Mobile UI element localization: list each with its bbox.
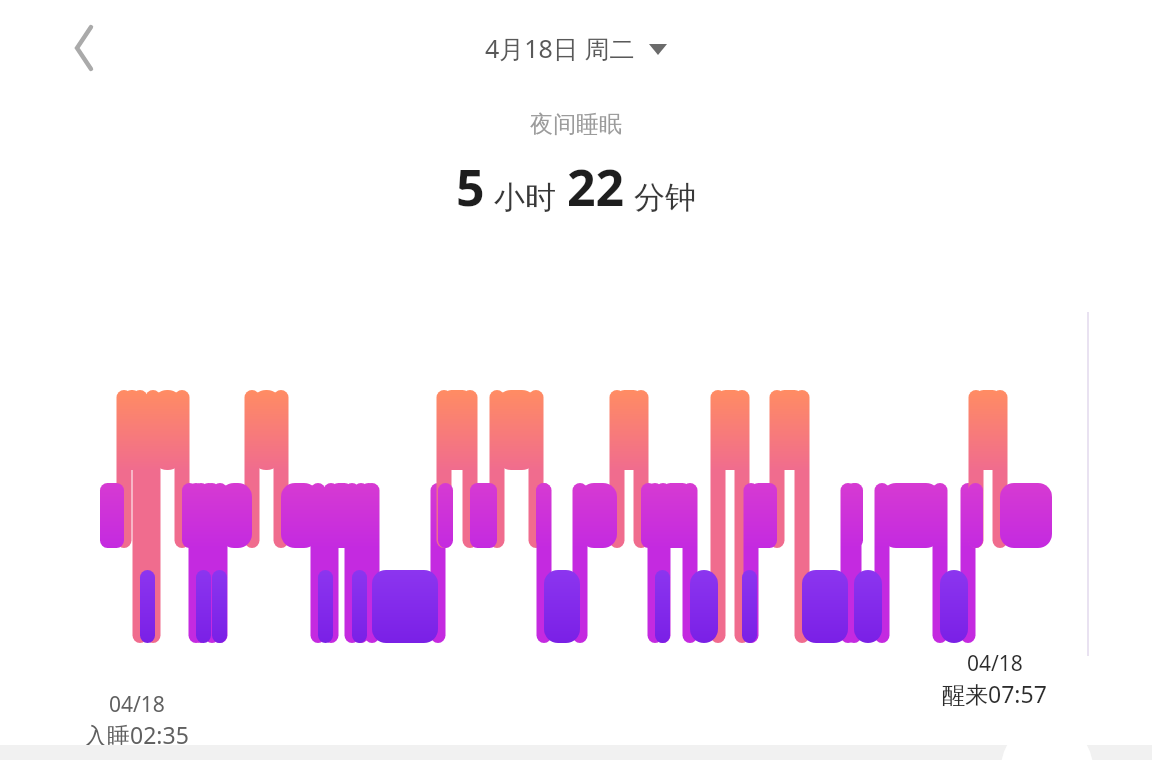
staticText: 04/18 xyxy=(967,649,1023,678)
staticText: 5 xyxy=(456,153,485,221)
staticText: 22 xyxy=(567,153,625,221)
staticText: 小时 xyxy=(494,178,556,217)
staticText: 醒来07:57 xyxy=(942,678,1047,709)
button[interactable]: Sleep stage chart xyxy=(0,0,1152,760)
staticText: 4月18日 周二 xyxy=(485,31,635,65)
staticText: 夜间睡眠 xyxy=(530,110,622,139)
button[interactable]: 4月18日 周二 xyxy=(485,31,668,65)
staticText: 04/18 xyxy=(109,690,165,719)
staticText: 入睡02:35 xyxy=(84,719,189,750)
button[interactable]: Back xyxy=(52,18,112,78)
staticText: 分钟 xyxy=(634,178,696,217)
